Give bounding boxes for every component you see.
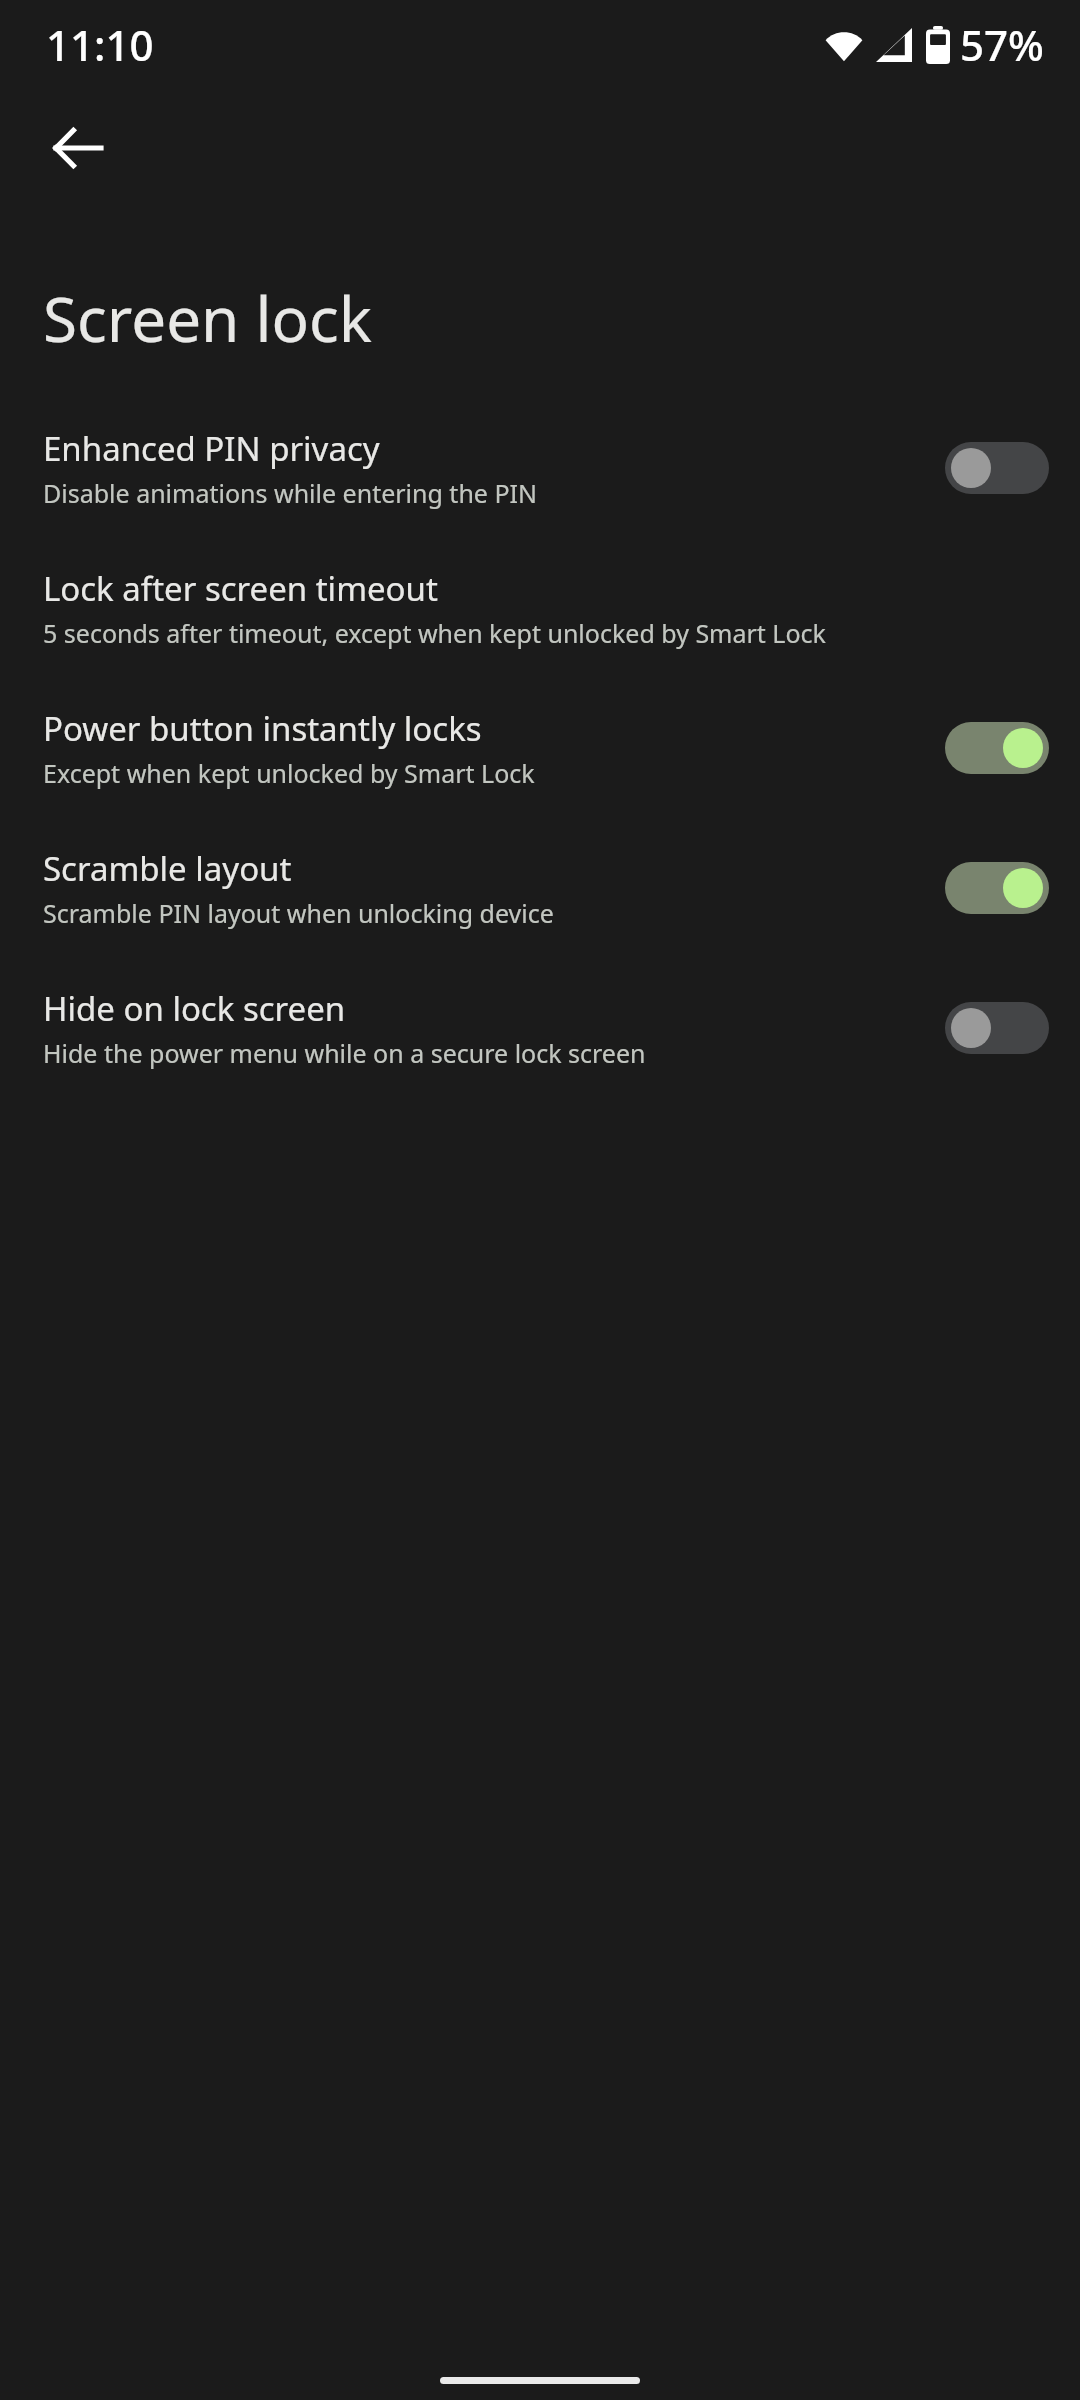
staticText: Disable animations while entering the PI… (43, 476, 538, 510)
button[interactable]: Hide on lock screen (0, 986, 1080, 1070)
button[interactable]: Back (22, 92, 134, 204)
button[interactable]: Scramble layout (0, 846, 1080, 930)
staticText: 57% (960, 16, 1044, 73)
button[interactable]: Power button instantly locks (0, 706, 1080, 790)
staticText: Except when kept unlocked by Smart Lock (43, 756, 535, 790)
button[interactable]: Off (945, 1002, 1049, 1054)
staticText: 11:10 (46, 16, 154, 73)
staticText: Screen lock (43, 276, 372, 360)
button[interactable]: On (945, 722, 1049, 774)
button[interactable]: Lock after screen timeout (0, 566, 1080, 650)
staticText: Scramble PIN layout when unlocking devic… (43, 896, 554, 930)
staticText: Power button instantly locks (43, 706, 482, 751)
staticText: Scramble layout (43, 846, 292, 891)
staticText: Hide the power menu while on a secure lo… (43, 1036, 646, 1070)
staticText: 5 seconds after timeout, except when kep… (43, 616, 826, 650)
staticText: Hide on lock screen (43, 986, 346, 1031)
button[interactable]: Enhanced PIN privacy (0, 426, 1080, 510)
staticText: Lock after screen timeout (43, 566, 438, 611)
button[interactable]: Off (945, 442, 1049, 494)
button[interactable]: On (945, 862, 1049, 914)
staticText: Enhanced PIN privacy (43, 426, 380, 471)
